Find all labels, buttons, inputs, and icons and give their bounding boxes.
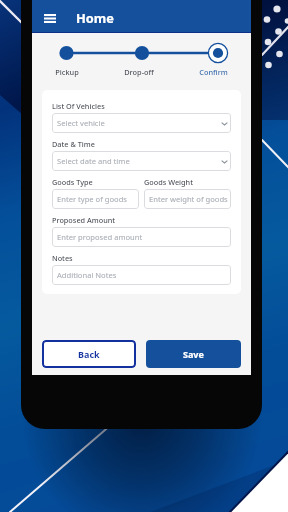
button[interactable]: Select date and time — [52, 151, 231, 171]
staticText: Save — [183, 348, 204, 360]
button[interactable]: Enter type of goods — [52, 189, 139, 209]
button[interactable]: Select vehicle — [52, 113, 231, 133]
staticText: List Of Vehicles — [52, 101, 105, 111]
staticText: Pickup — [55, 67, 79, 77]
staticText: Enter type of goods — [57, 194, 127, 204]
staticText: Home — [76, 9, 114, 26]
button[interactable]: Save — [146, 340, 241, 368]
button[interactable]: Enter weight of goods — [144, 189, 231, 209]
staticText: Drop-off — [124, 67, 154, 77]
button[interactable]: Additional Notes — [52, 265, 231, 285]
staticText: Additional Notes — [57, 270, 117, 280]
staticText: Proposed Amount — [52, 215, 116, 225]
staticText: Notes — [52, 253, 73, 263]
button[interactable]: Back — [42, 340, 136, 368]
button[interactable]: Open navigation menu — [43, 11, 57, 25]
staticText: Select date and time — [57, 156, 130, 166]
staticText: Confirm — [199, 67, 228, 77]
staticText: Back — [78, 348, 100, 360]
button[interactable]: Enter proposed amount — [52, 227, 231, 247]
staticText: Enter proposed amount — [57, 232, 143, 242]
staticText: Goods Type — [52, 177, 93, 187]
staticText: Select vehicle — [57, 118, 105, 128]
staticText: Date & Time — [52, 139, 95, 149]
staticText: Goods Weight — [144, 177, 193, 187]
staticText: Enter weight of goods — [149, 194, 228, 204]
